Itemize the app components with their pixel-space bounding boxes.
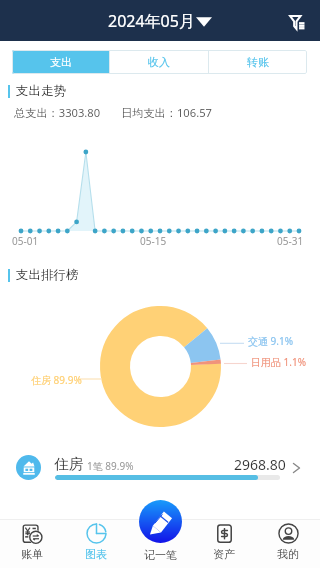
staticText: 资产 bbox=[213, 547, 235, 561]
staticText: 支出排行榜 bbox=[16, 267, 79, 283]
staticText: 收入 bbox=[148, 55, 170, 69]
staticText: 总支出：3303.80 bbox=[14, 105, 101, 120]
staticText: 支出走势 bbox=[16, 83, 66, 99]
staticText: 05-31 bbox=[277, 234, 304, 248]
staticText: 图表 bbox=[85, 547, 107, 561]
staticText: 交通 9.1% bbox=[248, 334, 294, 348]
staticText: 2024年05月 bbox=[108, 10, 195, 32]
staticText: 05-15 bbox=[140, 234, 167, 248]
button[interactable]: 住房 bbox=[0, 444, 320, 490]
button[interactable]: 收入 bbox=[110, 50, 208, 74]
staticText: 日用品 1.1% bbox=[251, 355, 307, 369]
button[interactable]: 支出 bbox=[12, 50, 109, 74]
staticText: 1笔 89.9% bbox=[87, 459, 134, 473]
staticText: 2968.80 bbox=[234, 455, 286, 474]
button[interactable]: 转账 bbox=[209, 50, 307, 74]
staticText: 日均支出：106.57 bbox=[121, 105, 212, 120]
staticText: 住房 bbox=[54, 455, 83, 473]
staticText: 记一笔 bbox=[144, 548, 177, 562]
button[interactable]: 图表 bbox=[64, 519, 128, 568]
staticText: 住房 89.9% bbox=[31, 373, 82, 387]
button[interactable]: 记一笔 bbox=[139, 500, 182, 543]
button[interactable]: 我的 bbox=[256, 519, 320, 568]
staticText: 05-01 bbox=[12, 234, 39, 248]
button[interactable]: 2024年05月 bbox=[108, 10, 212, 32]
staticText: 转账 bbox=[247, 55, 269, 69]
button[interactable]: Filter bbox=[280, 4, 314, 38]
button[interactable]: 资产 bbox=[192, 519, 256, 568]
staticText: 支出 bbox=[50, 55, 72, 69]
button[interactable]: 账单 bbox=[0, 519, 64, 568]
staticText: 账单 bbox=[21, 547, 43, 561]
staticText: 我的 bbox=[277, 547, 299, 561]
